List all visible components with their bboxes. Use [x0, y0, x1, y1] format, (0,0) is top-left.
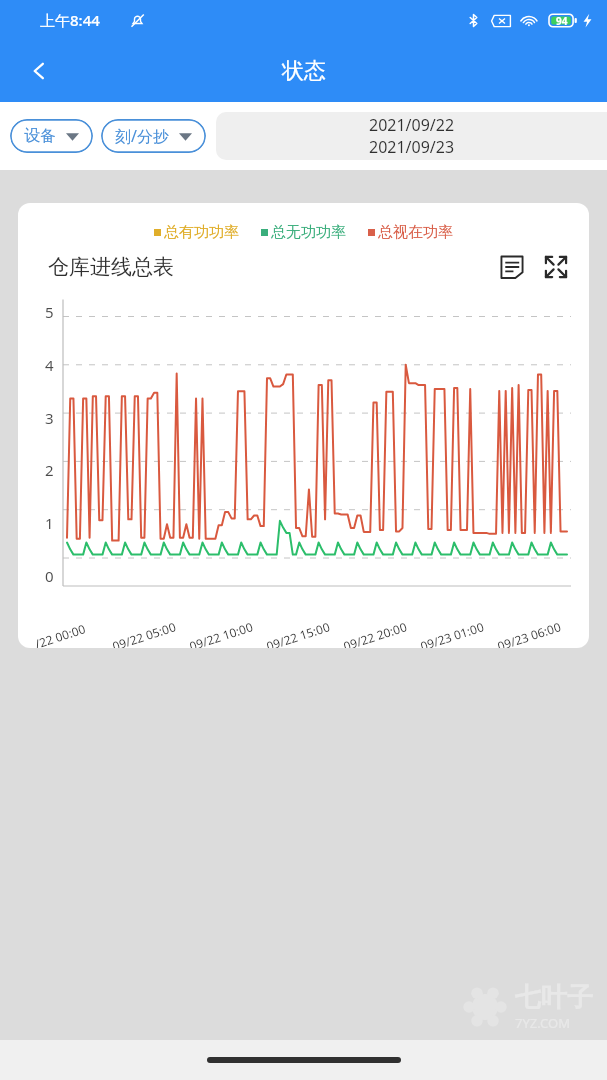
staticText: 1	[45, 513, 54, 533]
staticText: 2021/09/23	[369, 136, 455, 158]
button[interactable]: 2021/09/22	[216, 112, 607, 160]
staticText: 总无功功率	[271, 223, 346, 242]
button[interactable]: Back	[16, 48, 62, 94]
staticText: 09/22 05:00	[110, 618, 178, 648]
button[interactable]: Data table	[495, 250, 529, 284]
button[interactable]: 刻/分抄	[101, 119, 206, 153]
staticText: 2	[45, 460, 54, 480]
staticText: 5	[45, 302, 54, 322]
staticText: 09/23 01:00	[418, 618, 486, 648]
staticText: 总有功功率	[164, 223, 239, 242]
staticText: 0	[45, 566, 54, 586]
staticText: 09/22 20:00	[341, 618, 409, 648]
staticText: 总视在功率	[378, 223, 453, 242]
staticText: 上午8:44	[40, 10, 100, 30]
staticText: 94	[556, 14, 568, 28]
staticText: /22 00:00	[33, 620, 87, 648]
staticText: 仓库进线总表	[48, 254, 174, 280]
staticText: 2021/09/22	[369, 114, 455, 136]
staticText: 09/22 15:00	[264, 618, 332, 648]
staticText: 状态	[282, 57, 326, 85]
staticText: 3	[45, 408, 54, 428]
staticText: 7YZ.COM	[515, 1014, 570, 1032]
button[interactable]: Fullscreen	[539, 250, 573, 284]
staticText: 七叶子	[515, 981, 593, 1014]
staticText: 设备	[24, 126, 56, 146]
staticText: 刻/分抄	[115, 125, 169, 147]
staticText: 09/23 06:00	[495, 618, 563, 648]
button[interactable]: 设备	[10, 119, 93, 153]
staticText: 4	[45, 355, 54, 375]
staticText: 09/22 10:00	[187, 618, 255, 648]
